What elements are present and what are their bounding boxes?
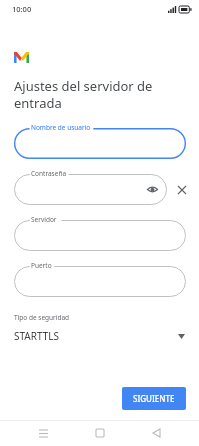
button[interactable]: Inicio	[87, 420, 113, 446]
button[interactable]: Tipo de seguridad	[0, 313, 199, 343]
button[interactable]: Borrar	[174, 182, 190, 198]
button[interactable]: Contraseña	[14, 174, 167, 205]
button[interactable]: SIGUIENTE	[122, 387, 186, 410]
button[interactable]: Mostrar contraseña	[146, 183, 159, 196]
staticText: 10:00	[12, 4, 32, 14]
staticText: Servidor	[31, 215, 57, 224]
staticText: Contraseña	[31, 169, 67, 178]
staticText: STARTTLS	[14, 329, 178, 343]
button[interactable]: Servidor	[14, 220, 186, 251]
staticText: Tipo de seguridad	[14, 313, 70, 322]
button[interactable]: Recientes	[30, 420, 56, 446]
staticText: Nombre de usuario	[31, 123, 91, 132]
staticText: Ajustes del servidor de entrada	[14, 77, 169, 112]
button[interactable]: Puerto	[14, 266, 186, 297]
staticText: Puerto	[31, 261, 52, 270]
button[interactable]: Nombre de usuario	[14, 128, 186, 159]
button[interactable]: Atrás	[143, 420, 169, 446]
staticText: SIGUIENTE	[133, 393, 175, 404]
